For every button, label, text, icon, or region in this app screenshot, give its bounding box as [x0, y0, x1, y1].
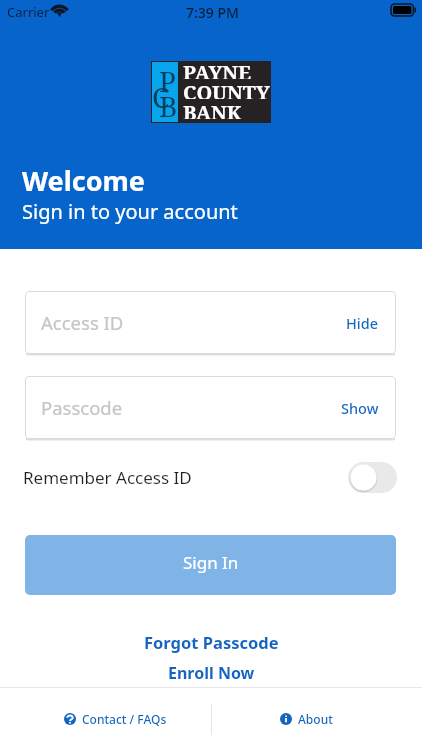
button[interactable]: Passcode: [25, 376, 396, 439]
button[interactable]: Contact / FAQs: [0, 688, 211, 750]
staticText: Show: [341, 398, 379, 418]
button[interactable]: Access ID: [25, 291, 396, 354]
staticText: Enroll Now: [168, 662, 255, 684]
staticText: Contact / FAQs: [82, 711, 167, 727]
staticText: Forgot Passcode: [144, 631, 279, 653]
button[interactable]: Forgot Passcode: [0, 627, 422, 657]
button[interactable]: Enroll Now: [0, 658, 422, 688]
staticText: Access ID: [41, 310, 124, 335]
staticText: Remember Access ID: [23, 466, 192, 489]
staticText: Sign in to your account: [22, 198, 238, 225]
staticText: BANK: [183, 99, 242, 119]
staticText: B: [159, 87, 178, 125]
button[interactable]: Sign In: [25, 535, 396, 595]
staticText: COUNTY: [183, 79, 270, 99]
staticText: Carrier: [7, 3, 50, 21]
staticText: PAYNE: [183, 59, 252, 79]
staticText: C: [152, 78, 170, 116]
staticText: About: [298, 711, 333, 727]
staticText: Welcome: [22, 162, 145, 199]
staticText: Sign In: [183, 551, 239, 574]
button[interactable]: About: [211, 688, 422, 750]
staticText: Passcode: [41, 395, 123, 420]
staticText: P: [159, 62, 176, 100]
button[interactable]: Remember Access ID toggle: [348, 462, 397, 493]
staticText: 7:39 PM: [186, 3, 239, 22]
staticText: Hide: [346, 313, 379, 333]
